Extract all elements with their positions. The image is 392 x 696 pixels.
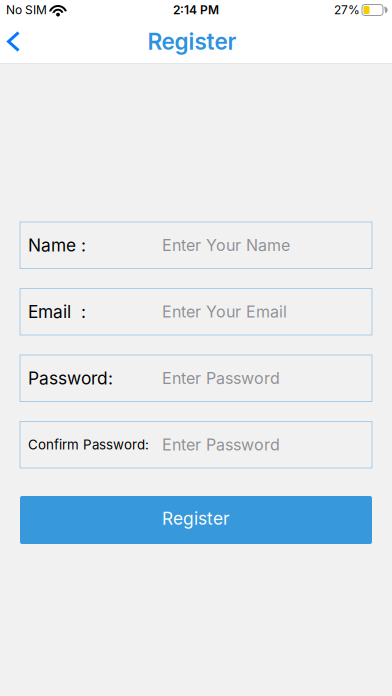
staticText: Confirm Password:	[28, 437, 149, 453]
button[interactable]: Confirm Password:	[20, 421, 372, 468]
button[interactable]	[0, 23, 26, 59]
staticText: Email :	[28, 301, 86, 322]
staticText: Enter Password	[162, 435, 280, 454]
staticText: Enter Your Email	[162, 302, 287, 321]
button[interactable]: Register	[20, 496, 372, 544]
staticText: Register	[162, 508, 230, 529]
button[interactable]: Password:	[20, 355, 372, 401]
button[interactable]: Name :	[20, 222, 372, 268]
staticText: Register	[147, 28, 236, 55]
staticText: No SIM	[6, 3, 47, 17]
button[interactable]: Email :	[20, 288, 372, 335]
staticText: 2:14 PM	[173, 3, 219, 17]
staticText: Enter Your Name	[162, 236, 290, 255]
staticText: 27%	[334, 3, 360, 17]
staticText: Password:	[28, 368, 113, 388]
staticText: Enter Password	[162, 369, 280, 388]
staticText: Name :	[28, 235, 86, 255]
